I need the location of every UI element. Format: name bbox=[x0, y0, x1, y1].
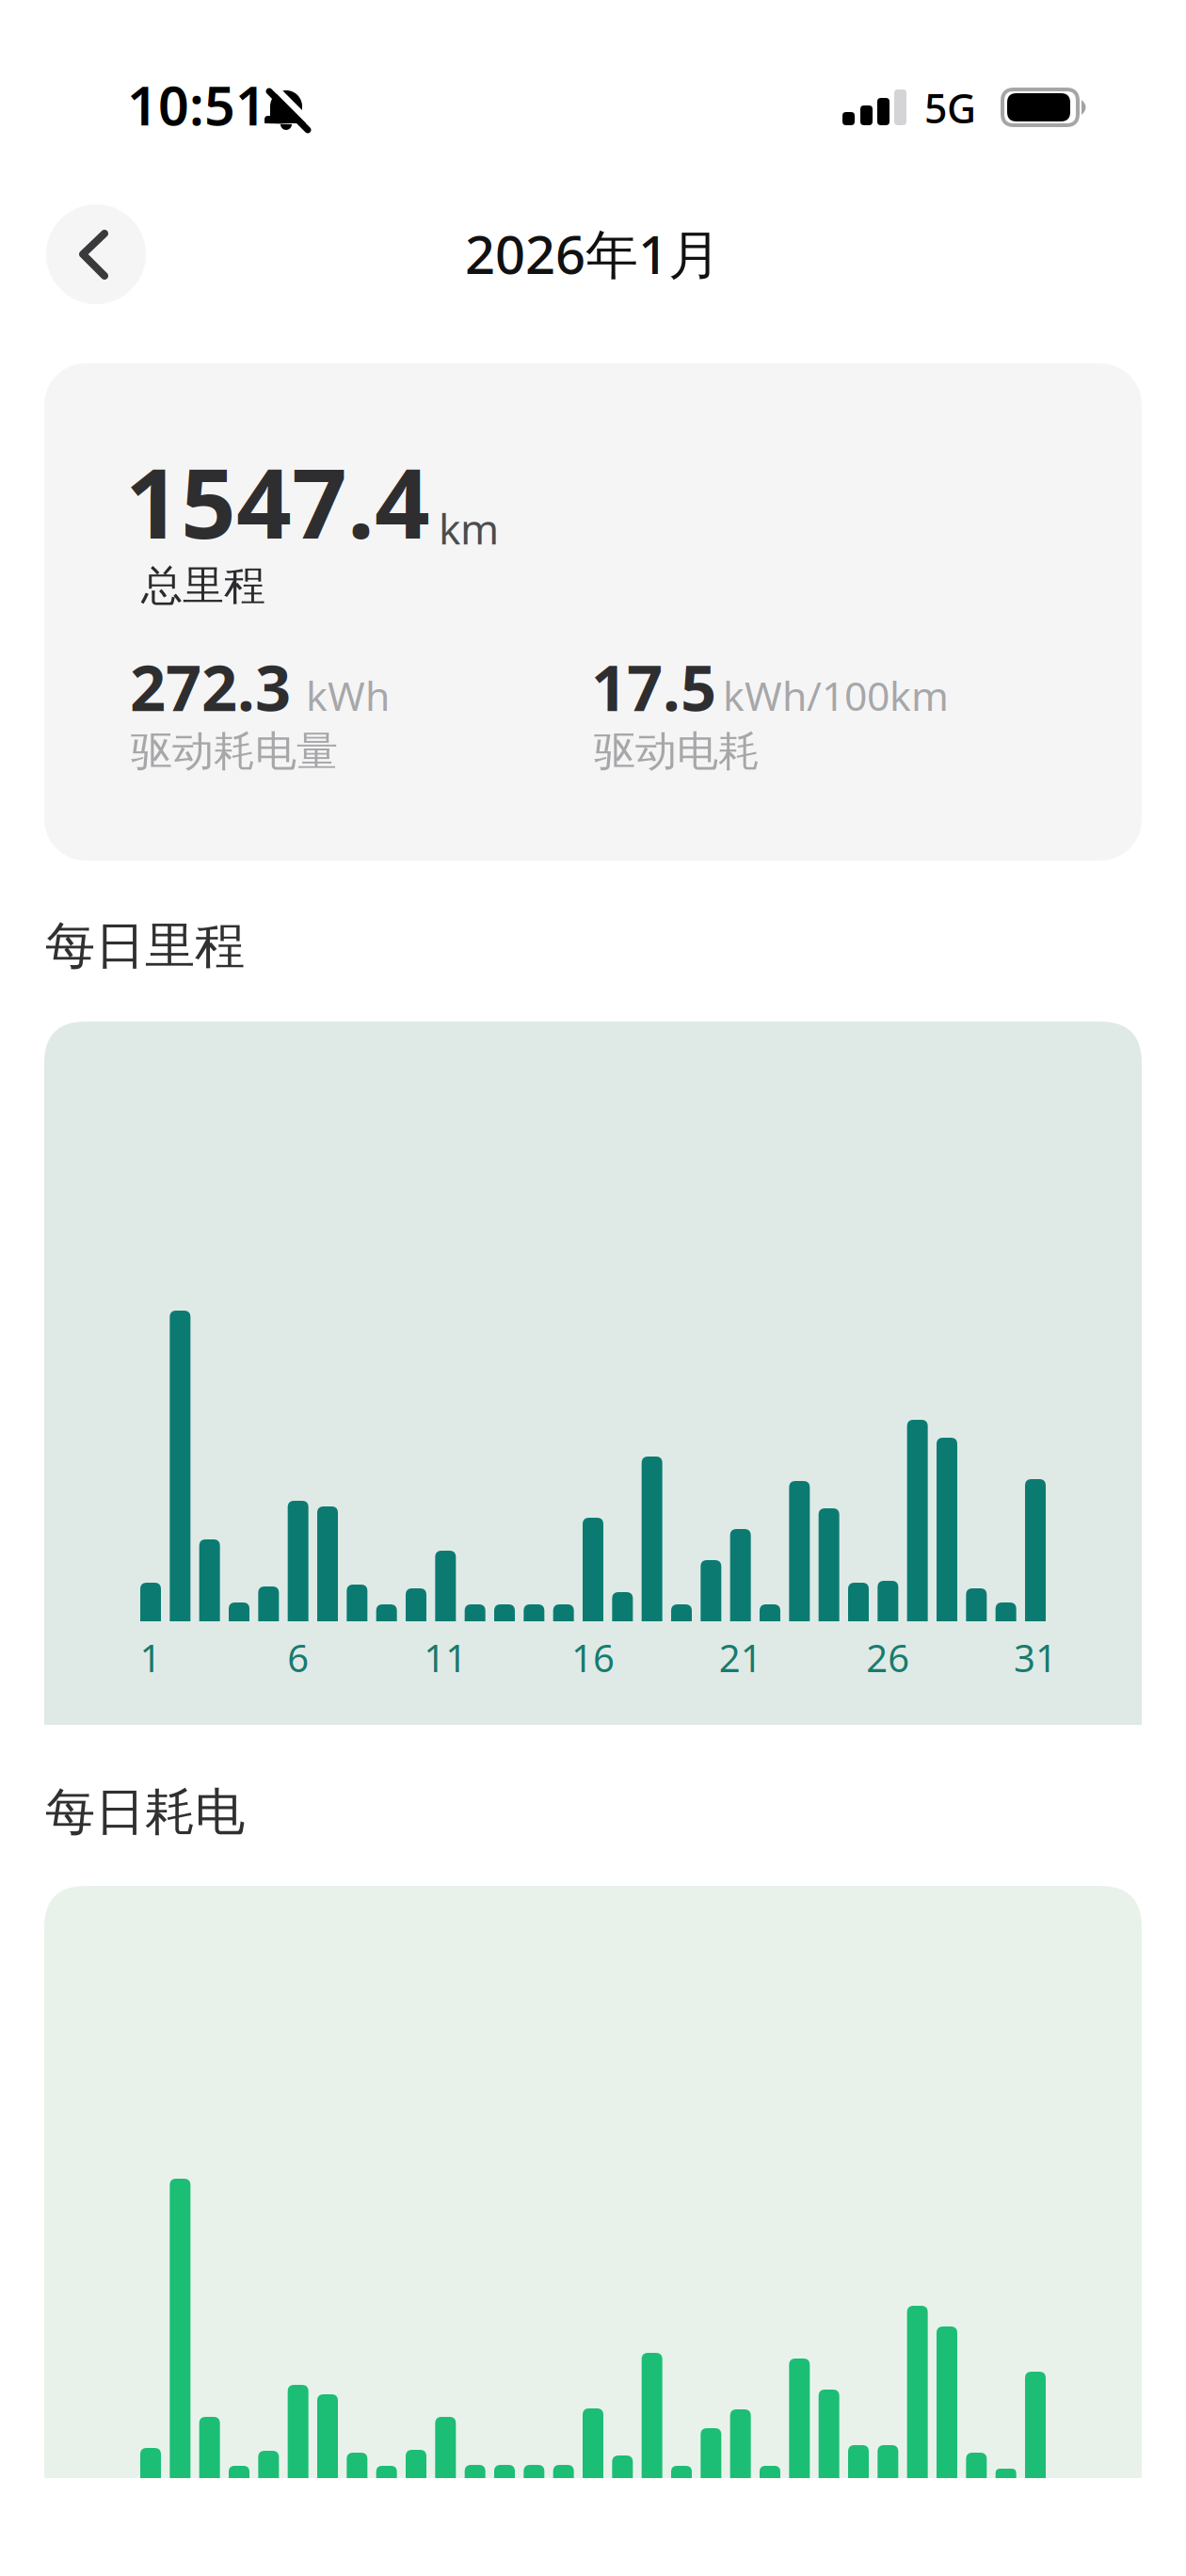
staticText: 1547.4 bbox=[125, 437, 430, 565]
button[interactable]: Back bbox=[46, 204, 146, 304]
staticText: 10:51 bbox=[127, 69, 266, 140]
staticText: 2026年1月 bbox=[465, 218, 721, 288]
staticText: 272.3 bbox=[130, 645, 291, 728]
staticText: kWh bbox=[306, 668, 390, 722]
staticText: 驱动耗电量 bbox=[131, 726, 338, 777]
staticText: 21 bbox=[719, 1633, 762, 1683]
staticText: 11 bbox=[424, 1633, 467, 1683]
staticText: kWh/100km bbox=[723, 668, 949, 722]
staticText: 每日里程 bbox=[45, 915, 245, 977]
staticText: 每日耗电 bbox=[45, 1781, 245, 1843]
staticText: 31 bbox=[1014, 1633, 1057, 1683]
staticText: 5G bbox=[924, 81, 976, 134]
staticText: 1 bbox=[140, 1633, 161, 1683]
staticText: 驱动电耗 bbox=[594, 726, 760, 777]
staticText: 17.5 bbox=[591, 645, 716, 728]
staticText: 6 bbox=[287, 1633, 309, 1683]
staticText: 总里程 bbox=[141, 560, 265, 611]
staticText: 26 bbox=[866, 1633, 910, 1683]
staticText: km bbox=[439, 501, 499, 556]
staticText: 16 bbox=[571, 1633, 615, 1683]
